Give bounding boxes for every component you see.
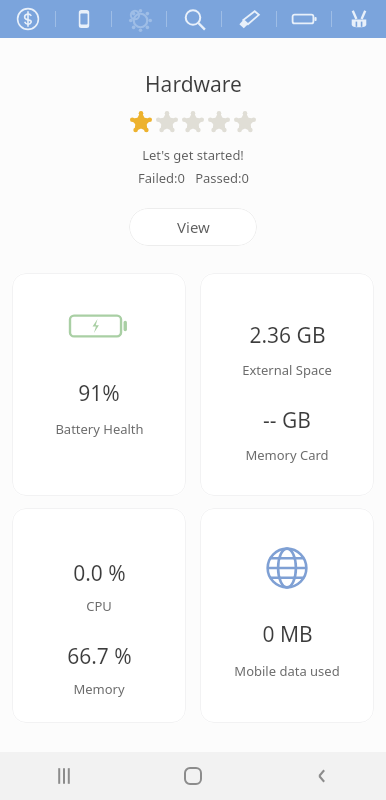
button[interactable]: View — [129, 208, 257, 246]
staticText: 2.36 GB — [249, 321, 326, 350]
staticText: -- GB — [263, 406, 311, 435]
staticText: 66.7 % — [67, 642, 132, 671]
button[interactable]: Money — [0, 0, 55, 38]
staticText: 91% — [78, 379, 120, 408]
button[interactable]: 0 MB — [200, 508, 374, 723]
button[interactable]: 0.0 % — [12, 508, 186, 723]
staticText: Let's get started! — [142, 146, 244, 164]
button[interactable]: Back — [257, 752, 386, 800]
staticText: 0 MB — [262, 620, 313, 649]
button[interactable]: Star 1 — [128, 109, 154, 135]
staticText: Battery Health — [55, 420, 144, 438]
button[interactable]: Robot — [332, 0, 386, 38]
button[interactable]: Phone — [56, 0, 111, 38]
staticText: Memory — [73, 680, 125, 698]
button[interactable]: Star 4 — [206, 109, 232, 135]
button[interactable]: Battery — [277, 0, 331, 38]
button[interactable]: 91% — [12, 273, 186, 496]
button[interactable]: Star 2 — [154, 109, 180, 135]
button[interactable]: Clean — [222, 0, 276, 38]
button[interactable]: Star 5 — [232, 109, 258, 135]
button[interactable]: Search — [167, 0, 221, 38]
staticText: View — [177, 217, 210, 237]
staticText: Memory Card — [245, 446, 329, 464]
staticText: Mobile data used — [234, 662, 340, 680]
button[interactable]: Recents — [0, 752, 128, 800]
staticText: External Space — [242, 361, 332, 379]
staticText: 0.0 % — [73, 559, 126, 588]
staticText: Failed:0 Passed:0 — [138, 169, 249, 187]
button[interactable]: Home — [128, 752, 257, 800]
button[interactable]: 2.36 GB — [200, 273, 374, 496]
button[interactable]: Star 3 — [180, 109, 206, 135]
button[interactable]: Settings — [112, 0, 166, 38]
staticText: Hardware — [145, 70, 242, 99]
staticText: CPU — [86, 597, 112, 615]
